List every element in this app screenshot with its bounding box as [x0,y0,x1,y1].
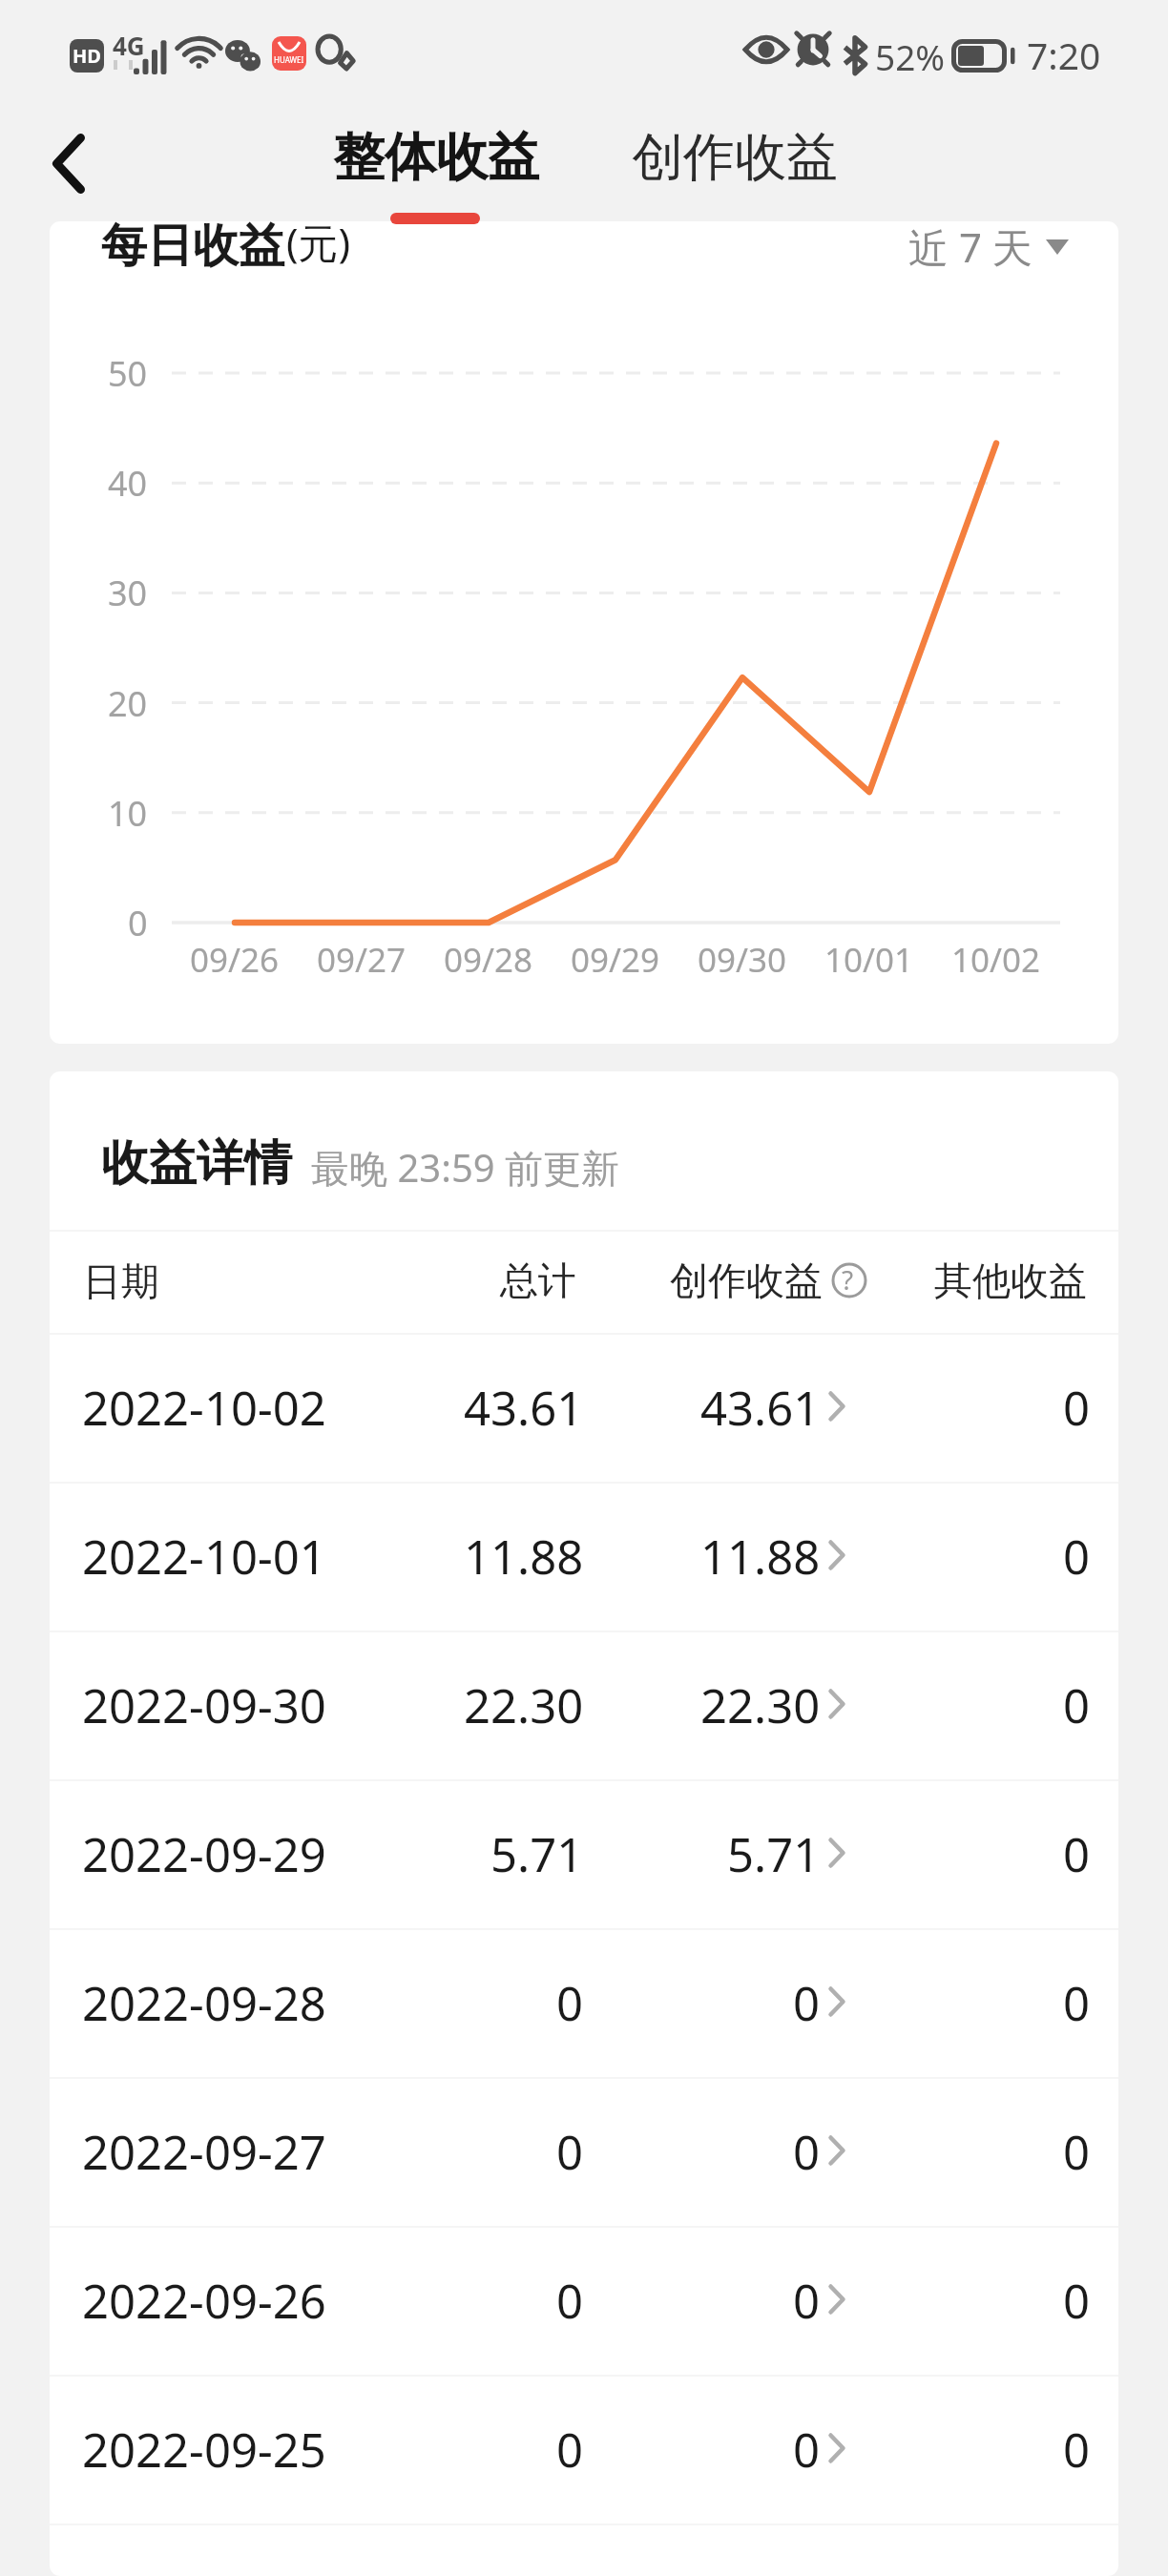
staticText: 整体收益 [333,125,539,190]
staticText: 0 [1063,2120,1091,2184]
button[interactable]: 2022-09-27 [50,2077,1118,2226]
button[interactable]: Help [831,1262,867,1298]
staticText: 最晚 23:59 前更新 [311,1141,620,1194]
staticText: 创作收益 [670,1257,823,1304]
button[interactable]: 2022-09-28 [50,1928,1118,2077]
staticText: 7:20 [1027,30,1101,80]
staticText: 0 [1063,1376,1091,1440]
staticText: 2022-09-30 [82,1673,326,1737]
staticText: 10 [108,790,148,837]
button[interactable]: 2022-10-02 [50,1333,1118,1482]
staticText: 0 [1063,1525,1091,1589]
staticText: 0 [1063,1673,1091,1737]
button[interactable]: 2022-09-26 [50,2226,1118,2375]
staticText: 09/27 [317,937,407,983]
staticText: 52% [875,32,946,80]
staticText: 2022-09-25 [82,2418,326,2482]
staticText: 2022-10-01 [82,1525,326,1589]
button[interactable]: 2022-09-29 [50,1779,1118,1928]
staticText: 11.88 [700,1525,821,1589]
staticText: 0 [1063,1971,1091,2035]
staticText: 2022-09-29 [82,1822,326,1886]
staticText: 0 [556,2418,584,2482]
staticText: 收益详情 [101,1133,292,1194]
staticText: 2022-10-02 [82,1376,326,1440]
staticText: HUAWEI [274,54,304,65]
staticText: 22.30 [700,1673,821,1737]
staticText: 近 7 天 [908,221,1032,274]
staticText: 0 [1063,2269,1091,2333]
staticText: 43.61 [700,1376,821,1440]
staticText: 每日收益 [101,221,284,275]
button[interactable]: 近 7 天 [908,221,1069,274]
staticText: 0 [793,2418,821,2482]
button[interactable]: 整体收益 [319,115,553,199]
staticText: 5.71 [490,1822,584,1886]
staticText: 22.30 [464,1673,584,1737]
button[interactable]: Back [19,114,118,214]
staticText: 0 [556,1971,584,2035]
staticText: 10/01 [824,937,914,983]
staticText: 0 [793,1971,821,2035]
staticText: 其他收益 [934,1257,1087,1304]
button[interactable]: 创作收益 [620,115,849,199]
staticText: 0 [793,2120,821,2184]
staticText: 09/30 [698,937,787,983]
staticText: 2022-09-28 [82,1971,326,2035]
button[interactable]: 2022-09-30 [50,1631,1118,1779]
staticText: 10/02 [951,937,1041,983]
staticText: 5.71 [727,1822,821,1886]
staticText: 总计 [500,1257,576,1304]
staticText: 09/26 [190,937,280,983]
staticText: ? [842,1261,854,1298]
staticText: 0 [556,2120,584,2184]
staticText: (元) [286,221,351,269]
staticText: 2022-09-27 [82,2120,326,2184]
button[interactable]: 2022-09-25 [50,2375,1118,2524]
staticText: 0 [1063,1822,1091,1886]
staticText: 0 [128,900,148,946]
staticText: 日期 [83,1257,159,1305]
staticText: 创作收益 [632,125,838,190]
staticText: 50 [108,350,148,397]
staticText: 11.88 [464,1525,584,1589]
staticText: 09/29 [571,937,660,983]
button[interactable]: 2022-10-01 [50,1482,1118,1631]
staticText: HD [73,43,101,69]
staticText: 2022-09-26 [82,2269,326,2333]
staticText: 40 [108,460,148,507]
staticText: 0 [793,2269,821,2333]
staticText: 43.61 [464,1376,584,1440]
staticText: 09/28 [444,937,533,983]
staticText: 4G [113,29,145,62]
staticText: 0 [1063,2418,1091,2482]
staticText: 0 [556,2269,584,2333]
staticText: 30 [108,570,148,616]
staticText: 20 [108,680,148,727]
